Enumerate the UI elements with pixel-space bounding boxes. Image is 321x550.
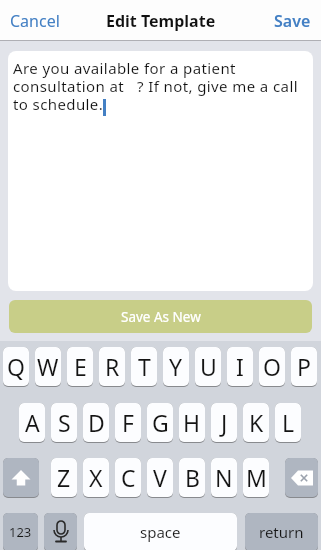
staticText: J [221,407,228,438]
button[interactable]: C [115,458,141,497]
button[interactable]: Are you available for a patient consulta… [8,51,313,291]
staticText: Q [7,351,25,382]
staticText: P [297,351,311,382]
button[interactable]: Save As New [9,300,312,333]
staticText: K [249,407,264,438]
button[interactable]: F [115,403,141,442]
button[interactable]: G [147,403,173,442]
button[interactable]: L [275,403,301,442]
button[interactable]: X [83,458,109,497]
staticText: space [140,522,181,542]
button[interactable]: J [211,403,237,442]
staticText: return [259,522,304,542]
staticText: N [215,462,233,493]
staticText: L [282,407,295,438]
button[interactable]: M [243,458,269,497]
button[interactable]: 123 [3,513,38,550]
button[interactable]: A [19,403,45,442]
staticText: G [152,407,169,438]
staticText: Save As New [121,308,201,326]
button[interactable] [3,458,39,497]
button[interactable]: Z [51,458,77,497]
button[interactable]: S [51,403,77,442]
staticText: C [121,462,136,493]
button[interactable]: B [179,458,205,497]
button[interactable]: Y [163,347,189,386]
staticText: D [88,407,105,438]
staticText: U [200,351,217,382]
staticText: I [236,351,244,382]
staticText: R [105,351,120,382]
staticText: Save [274,10,311,32]
staticText: O [263,351,281,382]
button[interactable]: Q [3,347,29,386]
staticText: 123 [9,523,32,541]
staticText: M [246,462,267,493]
button[interactable]: U [195,347,221,386]
button[interactable]: return [245,513,318,550]
staticText: T [138,351,151,382]
button[interactable]: Save [274,10,311,32]
staticText: F [122,407,134,438]
button[interactable]: H [179,403,205,442]
button[interactable]: R [99,347,125,386]
button[interactable]: P [291,347,317,386]
button[interactable]: I [227,347,253,386]
button[interactable]: D [83,403,109,442]
button[interactable]: V [147,458,173,497]
button[interactable]: O [259,347,285,386]
staticText: H [183,407,201,438]
staticText: S [58,407,71,438]
button[interactable]: E [67,347,93,386]
button[interactable]: W [35,347,61,386]
staticText: E [74,351,87,382]
staticText: W [37,351,59,382]
staticText: Z [57,462,71,493]
staticText: Are you available for a patient consulta… [13,58,298,115]
button[interactable]: space [84,513,237,550]
button[interactable] [44,513,77,550]
button[interactable]: K [243,403,269,442]
button[interactable]: Cancel [10,10,60,32]
button[interactable]: N [211,458,237,497]
staticText: A [25,407,40,438]
button[interactable] [285,458,318,497]
staticText: Cancel [10,10,60,32]
button[interactable]: T [131,347,157,386]
staticText: X [89,462,103,493]
staticText: B [185,462,200,493]
staticText: Edit Template [106,10,216,32]
staticText: V [153,462,167,493]
staticText: Y [169,351,183,382]
